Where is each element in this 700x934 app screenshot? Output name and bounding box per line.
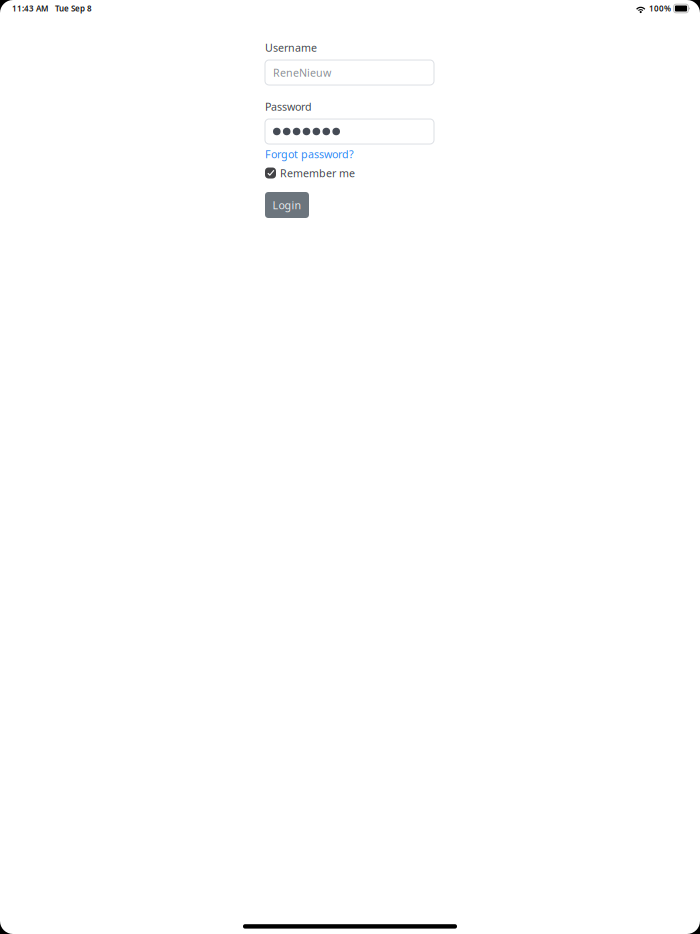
button[interactable]: Remember me [265, 167, 434, 179]
button[interactable]: Password field [265, 119, 434, 144]
button[interactable]: Forgot password? [265, 147, 434, 161]
staticText: 100% [649, 3, 671, 14]
button[interactable]: Login [265, 192, 309, 218]
staticText: Username [265, 40, 317, 55]
staticText: Forgot password? [265, 147, 354, 161]
staticText: Remember me [280, 166, 355, 180]
staticText: Login [272, 198, 301, 212]
staticText: 11:43 AM [12, 3, 48, 14]
staticText: Password [265, 99, 312, 114]
button[interactable]: Username field [265, 60, 434, 85]
staticText: Tue Sep 8 [55, 3, 92, 14]
staticText: ReneNieuw [273, 65, 331, 80]
